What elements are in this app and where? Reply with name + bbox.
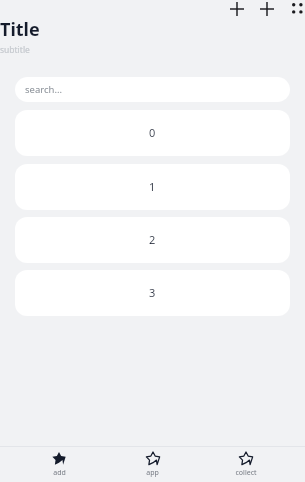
button[interactable]: More options: [290, 1, 305, 16]
staticText: collect: [235, 468, 257, 478]
button[interactable]: New: [258, 0, 275, 17]
staticText: 3: [149, 285, 156, 300]
button[interactable]: 2: [15, 217, 290, 263]
button[interactable]: app: [106, 447, 199, 482]
button[interactable]: 1: [15, 164, 290, 210]
button[interactable]: add: [12, 447, 106, 482]
staticText: subtitle: [0, 44, 30, 56]
staticText: add: [53, 468, 66, 478]
staticText: 1: [149, 179, 156, 194]
staticText: 0: [149, 125, 156, 140]
button[interactable]: 3: [15, 270, 290, 316]
button[interactable]: search...: [15, 77, 290, 102]
staticText: search...: [25, 83, 63, 96]
button[interactable]: 0: [15, 110, 290, 156]
button[interactable]: Add: [228, 0, 245, 17]
staticText: app: [146, 468, 159, 478]
staticText: Title: [0, 17, 40, 42]
staticText: 2: [149, 232, 156, 247]
button[interactable]: collect: [199, 447, 292, 482]
